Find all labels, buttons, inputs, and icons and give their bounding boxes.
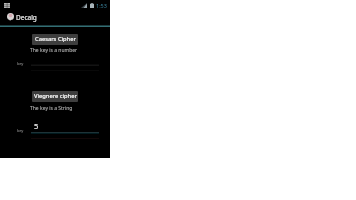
staticText: 1:53 xyxy=(96,2,107,9)
button[interactable]: Caesars Cipher xyxy=(32,34,78,45)
staticText: 5 xyxy=(34,121,39,131)
button[interactable] xyxy=(31,54,99,71)
button[interactable]: Viegnere cipher xyxy=(32,91,78,102)
button[interactable]: 5 xyxy=(31,121,99,138)
staticText: Caesars Cipher xyxy=(35,35,76,43)
staticText: The key is a String xyxy=(30,105,73,112)
staticText: key xyxy=(17,61,24,66)
staticText: Decalg xyxy=(16,13,37,22)
staticText: The key is a number xyxy=(30,47,78,54)
staticText: key xyxy=(17,128,24,133)
staticText: Viegnere cipher xyxy=(34,92,77,100)
